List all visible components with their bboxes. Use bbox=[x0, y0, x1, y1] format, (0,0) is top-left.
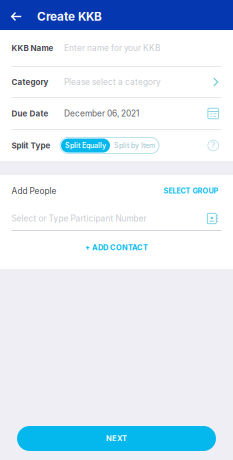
button[interactable]: Back bbox=[0, 0, 27, 30]
staticText: Select or Type Participant Number bbox=[11, 213, 146, 223]
staticText: Split Equally bbox=[65, 141, 106, 150]
staticText: Category bbox=[11, 77, 48, 87]
staticText: Split Type bbox=[11, 141, 50, 150]
button[interactable]: Choose from contacts bbox=[207, 213, 218, 224]
staticText: NEXT bbox=[106, 434, 127, 443]
staticText: ? bbox=[211, 140, 216, 151]
button[interactable]: Category bbox=[0, 67, 233, 97]
staticText: + ADD CONTACT bbox=[85, 243, 148, 252]
staticText: SELECT GROUP bbox=[163, 187, 218, 195]
button[interactable]: NEXT bbox=[17, 426, 216, 451]
button[interactable]: Split Equally bbox=[61, 138, 110, 152]
staticText: Create KKB bbox=[37, 9, 102, 24]
button[interactable]: SELECT GROUP bbox=[163, 187, 218, 195]
staticText: Enter name for your KKB bbox=[64, 43, 160, 53]
button[interactable]: Split by Item bbox=[110, 138, 158, 152]
button[interactable]: + ADD CONTACT bbox=[0, 231, 233, 264]
staticText: Add People bbox=[11, 186, 56, 196]
staticText: Please select a category bbox=[64, 77, 161, 87]
staticText: Split by Item bbox=[114, 141, 155, 150]
button[interactable]: What is split type bbox=[208, 140, 218, 151]
staticText: December 06, 2021 bbox=[64, 108, 139, 118]
button[interactable]: Due Date bbox=[0, 98, 233, 129]
staticText: KKB Name bbox=[11, 43, 53, 53]
staticText: Due Date bbox=[11, 109, 48, 118]
